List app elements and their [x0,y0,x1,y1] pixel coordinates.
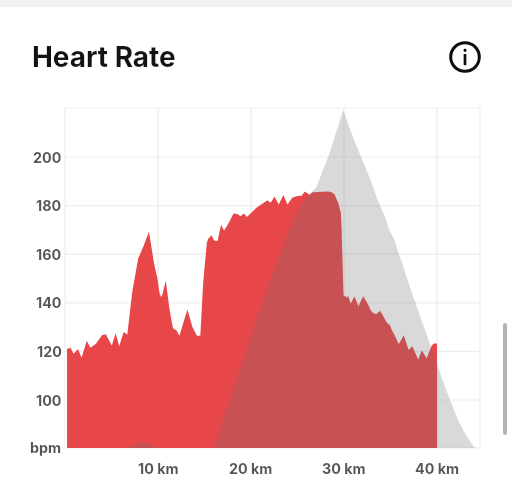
staticText: 40 km [415,460,460,477]
staticText: 30 km [322,460,366,477]
staticText: 120 [37,343,62,360]
staticText: 20 km [229,460,273,477]
staticText: bpm [30,439,62,456]
staticText: 160 [36,246,62,263]
staticText: 140 [36,294,62,311]
button[interactable]: Info [448,40,482,74]
staticText: 200 [33,149,62,166]
staticText: 10 km [138,460,179,477]
staticText: 180 [36,197,62,214]
staticText: 100 [36,392,62,409]
staticText: Heart Rate [32,40,176,74]
